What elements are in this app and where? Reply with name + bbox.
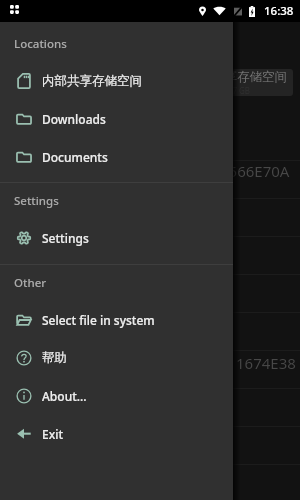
staticText: 1674E38: [236, 353, 296, 373]
staticText: 可用空间 14.7 GB: [187, 85, 251, 96]
staticText: 16:38: [264, 3, 294, 19]
staticText: Select file in system: [42, 312, 155, 328]
staticText: Locations: [14, 36, 67, 52]
staticText: About...: [42, 388, 87, 404]
staticText: 内部共享存储空间: [42, 73, 142, 89]
staticText: 1566E70A: [220, 161, 290, 181]
staticText: Settings: [14, 193, 59, 209]
button[interactable]: 内部共享存储空间: [0, 62, 233, 100]
staticText: 内部共享存储空间: [187, 69, 287, 85]
button[interactable]: 帮助: [0, 339, 233, 377]
button[interactable]: About...: [0, 377, 233, 415]
staticText: Settings: [42, 230, 89, 246]
staticText: 帮助: [42, 350, 67, 366]
staticText: Documents: [42, 149, 108, 165]
button[interactable]: Exit: [0, 415, 233, 453]
button[interactable]: Downloads: [0, 100, 233, 138]
staticText: Other: [14, 275, 47, 291]
button[interactable]: Select file in system: [0, 301, 233, 339]
staticText: Exit: [42, 426, 64, 442]
button[interactable]: Settings: [0, 219, 233, 257]
staticText: Downloads: [42, 111, 106, 127]
button[interactable]: Documents: [0, 138, 233, 176]
